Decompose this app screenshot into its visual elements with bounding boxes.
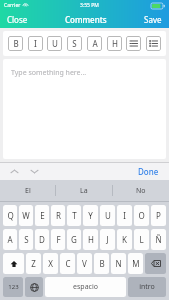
staticText: H	[88, 234, 94, 245]
button[interactable]: Bulleted list	[126, 36, 141, 51]
button[interactable]: B	[8, 36, 23, 51]
button[interactable]: U	[100, 205, 115, 226]
staticText: B	[13, 38, 19, 49]
staticText: C	[65, 258, 71, 269]
staticText: 3:55 PM	[80, 2, 99, 9]
button[interactable]: O	[134, 205, 149, 226]
button[interactable]: H	[83, 229, 98, 250]
button[interactable]: S	[19, 229, 33, 250]
button[interactable]: No	[113, 180, 169, 201]
button[interactable]: espacio	[45, 277, 126, 297]
staticText: B	[99, 258, 105, 269]
button[interactable]: K	[117, 229, 132, 250]
button[interactable]: E	[35, 205, 49, 226]
button[interactable]: F	[51, 229, 65, 250]
staticText: T	[72, 210, 77, 221]
button[interactable]: M	[128, 253, 143, 274]
button[interactable]: Numbered list	[146, 36, 161, 51]
button[interactable]: intro	[128, 277, 166, 297]
button[interactable]: Q	[3, 205, 17, 226]
staticText: V	[82, 258, 87, 269]
button[interactable]: T	[67, 205, 81, 226]
button[interactable]: N	[111, 253, 126, 274]
button[interactable]: V	[77, 253, 92, 274]
button[interactable]: I	[28, 36, 43, 51]
staticText: Save	[144, 14, 162, 25]
button[interactable]: Previous field	[7, 164, 21, 178]
staticText: L	[139, 234, 144, 245]
button[interactable]: Next field	[27, 164, 41, 178]
staticText: Z	[31, 258, 36, 269]
button[interactable]: El	[0, 180, 55, 201]
staticText: I	[34, 38, 37, 49]
staticText: Y	[88, 210, 93, 221]
button[interactable]: Ñ	[151, 229, 166, 250]
button[interactable]: C	[60, 253, 75, 274]
button[interactable]: Y	[83, 205, 98, 226]
staticText: U	[105, 210, 111, 221]
staticText: E	[40, 210, 45, 221]
staticText: D	[39, 234, 45, 245]
staticText: N	[115, 258, 122, 269]
staticText: A	[92, 38, 98, 49]
staticText: Ñ	[155, 234, 162, 245]
button[interactable]: J	[100, 229, 115, 250]
staticText: K	[122, 234, 127, 245]
staticText: X	[48, 258, 53, 269]
button[interactable]: Delete	[145, 253, 166, 274]
button[interactable]: P	[151, 205, 166, 226]
button[interactable]: Close	[4, 12, 31, 27]
button[interactable]: B	[94, 253, 109, 274]
button[interactable]: I	[117, 205, 132, 226]
button[interactable]: Shift	[3, 253, 24, 274]
staticText: espacio	[73, 282, 98, 292]
staticText: O	[138, 210, 145, 221]
staticText: P	[156, 210, 161, 221]
button[interactable]: Done	[135, 164, 162, 179]
staticText: R	[56, 210, 61, 221]
staticText: M	[132, 258, 140, 269]
staticText: No	[136, 186, 146, 196]
button[interactable]: A	[87, 36, 102, 51]
button[interactable]: La	[56, 180, 112, 201]
staticText: A	[7, 234, 13, 245]
button[interactable]: X	[43, 253, 58, 274]
staticText: S	[72, 38, 77, 49]
button[interactable]: R	[51, 205, 65, 226]
staticText: J	[106, 234, 109, 245]
button[interactable]: 123	[3, 277, 23, 297]
button[interactable]: D	[35, 229, 49, 250]
staticText: 123	[8, 283, 19, 291]
staticText: Comments	[65, 14, 107, 25]
button[interactable]: W	[19, 205, 33, 226]
staticText: Carrier	[4, 2, 21, 9]
staticText: Q	[7, 210, 14, 221]
staticText: I	[123, 210, 126, 221]
button[interactable]: Z	[26, 253, 41, 274]
staticText: S	[24, 234, 29, 245]
button[interactable]: Next keyboard	[25, 277, 43, 297]
staticText: intro	[139, 282, 155, 292]
staticText: Done	[138, 166, 159, 177]
staticText: El	[25, 186, 31, 196]
staticText: G	[71, 234, 77, 245]
button[interactable]: H	[107, 36, 122, 51]
button[interactable]: U	[47, 36, 62, 51]
button[interactable]: Type something here...	[3, 59, 166, 159]
button[interactable]: S	[67, 36, 82, 51]
staticText: Close	[7, 14, 28, 25]
button[interactable]: L	[134, 229, 149, 250]
button[interactable]: A	[3, 229, 17, 250]
staticText: La	[80, 186, 88, 196]
button[interactable]: Save	[141, 12, 165, 27]
staticText: W	[22, 210, 30, 221]
staticText: F	[56, 234, 61, 245]
staticText: U	[52, 38, 58, 49]
staticText: Type something here...	[11, 68, 87, 78]
button[interactable]: G	[67, 229, 81, 250]
staticText: H	[112, 38, 118, 49]
